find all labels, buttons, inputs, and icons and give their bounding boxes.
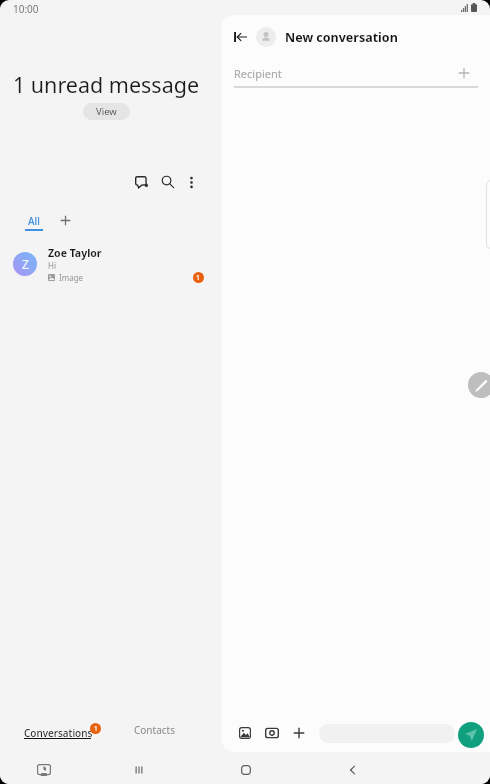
staticText: All bbox=[28, 214, 40, 228]
staticText: Conversations bbox=[24, 726, 93, 740]
button[interactable]: More options bbox=[178, 169, 204, 195]
button[interactable]: Contacts bbox=[128, 717, 181, 743]
button[interactable]: View bbox=[83, 103, 130, 120]
button[interactable]: App pair bbox=[30, 756, 58, 784]
button[interactable]: Gallery bbox=[234, 722, 256, 744]
button[interactable]: Back bbox=[339, 756, 367, 784]
button[interactable]: Search bbox=[155, 169, 181, 195]
staticText: Contacts bbox=[134, 723, 175, 737]
staticText: New conversation bbox=[285, 29, 398, 46]
staticText: Hi bbox=[48, 260, 56, 271]
button[interactable]: Collapse panel bbox=[229, 26, 251, 48]
staticText: Zoe Taylor bbox=[48, 246, 102, 260]
staticText: Recipient bbox=[234, 66, 282, 81]
button[interactable]: Camera bbox=[261, 722, 283, 744]
button[interactable]: Z bbox=[0, 243, 221, 285]
button[interactable]: Compose message bbox=[468, 372, 490, 398]
button[interactable]: Add category bbox=[56, 211, 74, 229]
button[interactable]: New conversation bbox=[128, 169, 154, 195]
button[interactable]: Recent apps bbox=[125, 756, 153, 784]
button[interactable]: Conversations bbox=[18, 719, 99, 743]
button[interactable]: More options bbox=[288, 722, 310, 744]
staticText: Image bbox=[59, 272, 84, 283]
staticText: 10:00 bbox=[13, 2, 39, 16]
button[interactable]: Home bbox=[232, 756, 260, 784]
staticText: 1 unread message bbox=[0, 70, 212, 99]
staticText: 1 bbox=[196, 273, 201, 283]
staticText: Z bbox=[22, 256, 29, 272]
button[interactable]: All bbox=[24, 214, 44, 231]
button[interactable]: Send bbox=[458, 722, 484, 748]
staticText: View bbox=[96, 105, 117, 118]
button[interactable]: Add recipient bbox=[455, 64, 473, 82]
staticText: 1 bbox=[94, 724, 98, 733]
